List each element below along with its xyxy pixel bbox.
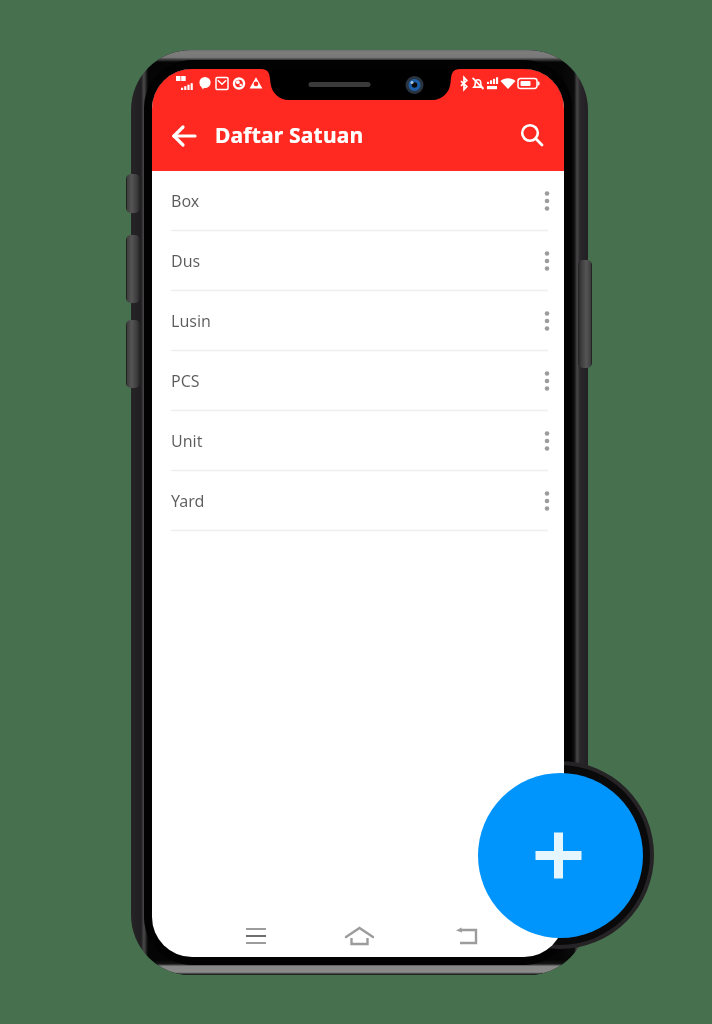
button[interactable]: Recent apps xyxy=(236,916,276,956)
staticText: Unit xyxy=(171,430,203,452)
button[interactable]: More options for Yard xyxy=(532,486,562,516)
staticText: Dus xyxy=(171,250,201,272)
button[interactable]: Add xyxy=(478,773,643,938)
button[interactable]: More options for Box xyxy=(532,186,562,216)
button[interactable]: Yard xyxy=(152,471,564,531)
button[interactable]: More options for Unit xyxy=(532,426,562,456)
staticText: Yard xyxy=(171,490,205,512)
button[interactable]: More options for Lusin xyxy=(532,306,562,336)
button[interactable]: More options for Dus xyxy=(532,246,562,276)
button[interactable]: Back xyxy=(447,916,487,956)
button[interactable]: PCS xyxy=(152,351,564,411)
button[interactable]: Back xyxy=(169,119,203,153)
button[interactable]: Box xyxy=(152,171,564,231)
button[interactable]: Unit xyxy=(152,411,564,471)
staticText: Daftar Satuan xyxy=(215,121,364,150)
staticText: Box xyxy=(171,190,200,212)
button[interactable]: Dus xyxy=(152,231,564,291)
button[interactable]: Lusin xyxy=(152,291,564,351)
button[interactable]: Home xyxy=(339,915,379,955)
staticText: PCS xyxy=(171,370,200,392)
button[interactable]: More options for PCS xyxy=(532,366,562,396)
staticText: Lusin xyxy=(171,310,211,332)
button[interactable]: Search xyxy=(516,119,550,153)
